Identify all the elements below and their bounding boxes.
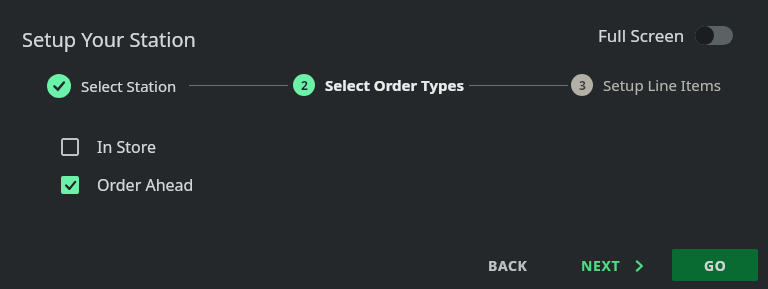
staticText: GO — [704, 256, 727, 275]
button[interactable]: 3 — [568, 72, 725, 98]
staticText: 2 — [301, 77, 308, 93]
button[interactable]: BACK — [480, 250, 536, 281]
staticText: NEXT — [581, 256, 621, 275]
button[interactable]: Full Screen — [596, 22, 735, 49]
staticText: Setup Line Items — [603, 75, 722, 95]
other: Full Screen toggle — [695, 26, 733, 45]
staticText: In Store — [97, 136, 157, 158]
staticText: Order Ahead — [97, 174, 194, 196]
button[interactable]: Select Station — [44, 72, 180, 100]
staticText: BACK — [488, 256, 528, 275]
button[interactable]: In Store — [58, 132, 160, 162]
staticText: Full Screen — [598, 24, 685, 47]
staticText: Setup Your Station — [22, 26, 196, 53]
button[interactable]: Order Ahead — [58, 170, 197, 200]
staticText: 3 — [579, 77, 586, 93]
button[interactable]: NEXT — [573, 250, 653, 281]
staticText: Select Station — [81, 76, 177, 96]
button[interactable]: GO — [672, 249, 758, 281]
staticText: Select Order Types — [325, 75, 464, 95]
button[interactable]: 2 — [290, 72, 467, 98]
